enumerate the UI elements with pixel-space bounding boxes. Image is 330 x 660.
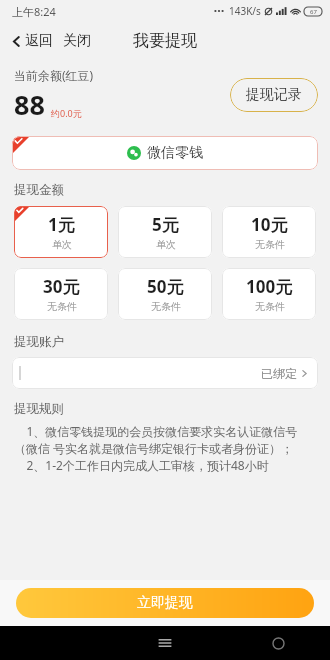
staticText: 约0.0元 [51,107,82,119]
button[interactable]: 提现记录 [230,78,318,112]
staticText: 微信零钱 [147,144,203,162]
staticText: 143K/s [229,4,261,18]
staticText: 提现金额 [14,182,64,198]
other: Recents [157,635,173,651]
button[interactable]: 微信零钱 [12,136,318,170]
staticText: 关闭 [63,32,91,50]
staticText: 88 [14,86,45,123]
staticText: 无条件 [151,300,181,313]
staticText: 无条件 [255,300,285,313]
button[interactable]: 返回 [8,32,55,50]
button[interactable]: 50元 [118,268,212,320]
staticText: 单次 [52,238,72,251]
staticText: 上午8:24 [12,4,56,19]
staticText: 1、微信零钱提现的会员按微信要求实名认证微信号（微信 号实名就是微信号绑定银行卡… [14,423,316,457]
staticText: 无条件 [47,300,77,313]
staticText: 无条件 [255,238,285,251]
staticText: 50元 [147,275,184,298]
button[interactable]: 100元 [222,268,316,320]
button[interactable]: 5元 [118,206,212,258]
button[interactable]: 30元 [14,268,108,320]
button[interactable]: 1元 [14,206,108,258]
staticText: 已绑定 [261,366,297,381]
staticText: 100元 [246,275,293,298]
staticText: 提现规则 [14,401,64,417]
button[interactable]: 立即提现 [16,588,314,618]
button[interactable]: 已绑定 [12,357,318,389]
staticText: 我要提现 [133,31,197,51]
staticText: 提现记录 [246,86,302,104]
staticText: 单次 [156,238,176,251]
button[interactable]: 10元 [222,206,316,258]
staticText: 30元 [43,275,80,298]
button[interactable]: 关闭 [63,32,91,50]
staticText: 2、1-2个工作日内完成人工审核，预计48小时 [14,457,269,473]
staticText: 提现账户 [14,334,64,350]
other: 返回 [10,35,23,48]
staticText: 当前余额(红豆) [14,67,94,83]
staticText: 1元 [48,213,75,236]
staticText: 67 [310,8,317,16]
staticText: 5元 [152,213,179,236]
staticText: 立即提现 [137,594,193,612]
other: Home [273,638,284,649]
staticText: 10元 [251,213,288,236]
staticText: 返回 [25,32,53,50]
